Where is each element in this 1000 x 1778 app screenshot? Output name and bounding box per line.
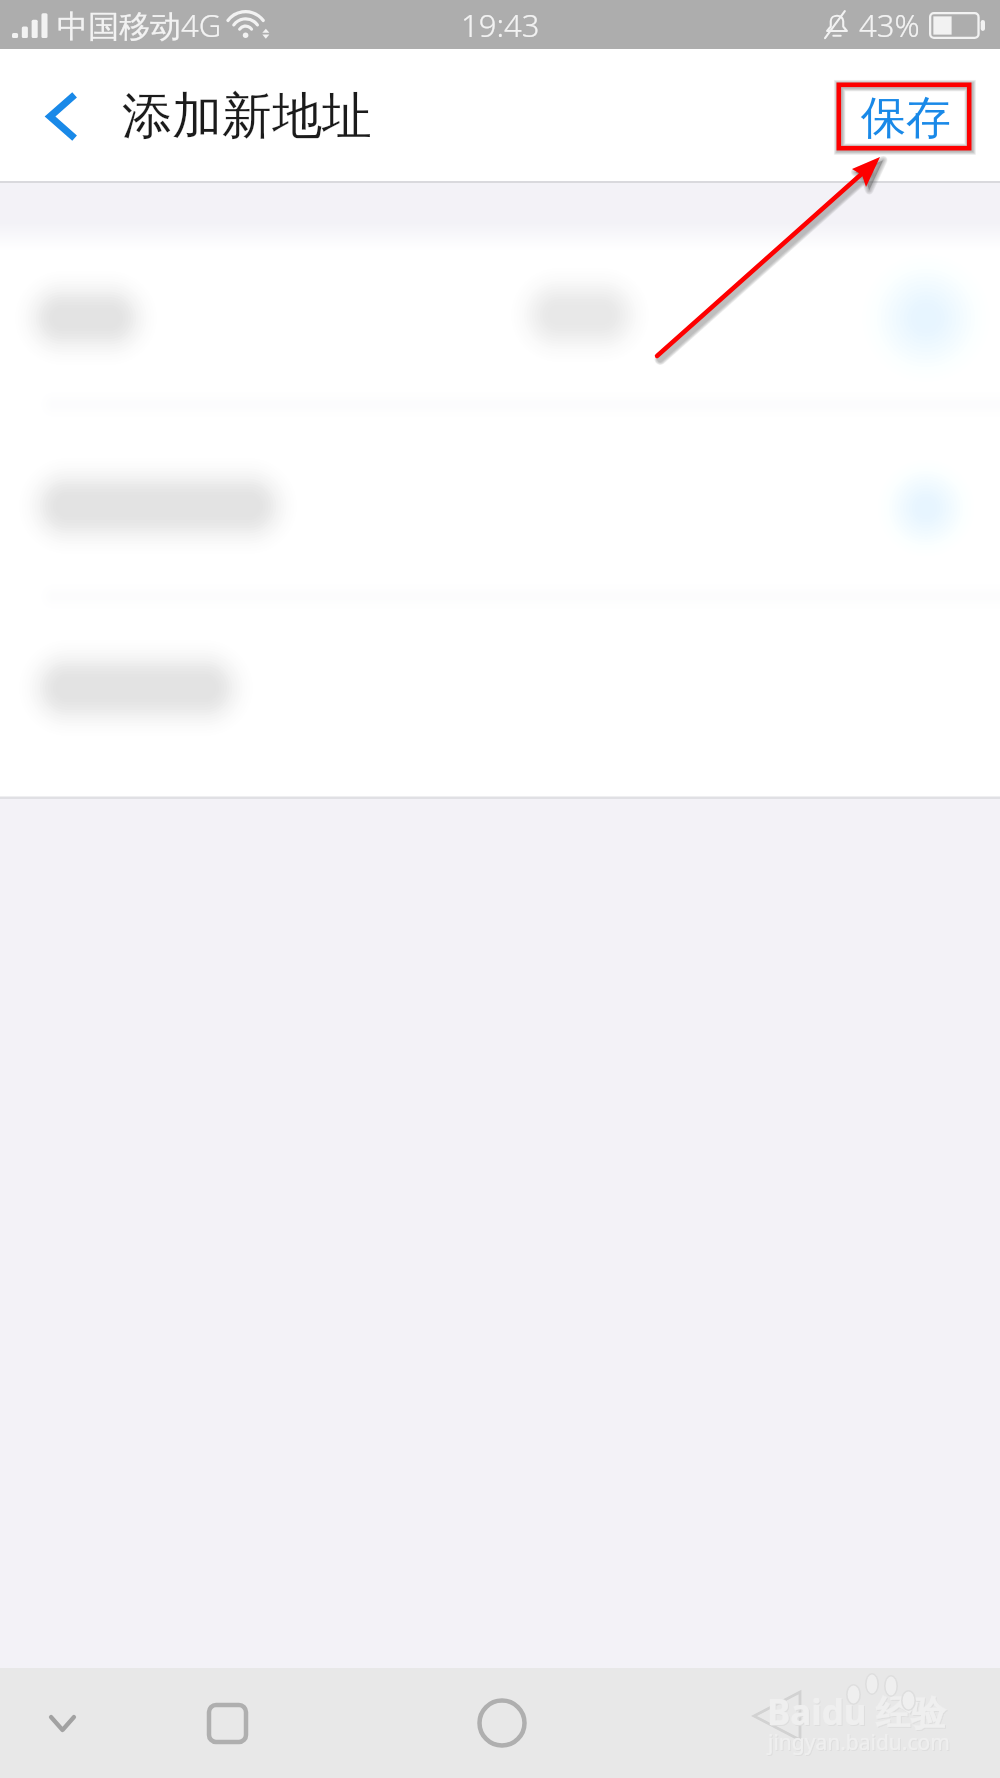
staticText: 19:43	[461, 4, 540, 46]
staticText: Baidu 经验	[768, 1689, 947, 1737]
button[interactable]: Home	[448, 1668, 556, 1778]
button[interactable]: Back	[0, 49, 124, 183]
staticText: Baidu 经验	[767, 1688, 946, 1736]
button[interactable]: Detailed address	[0, 596, 1000, 799]
button[interactable]: Region	[0, 404, 1000, 596]
button[interactable]: Hide keyboard	[8, 1668, 116, 1778]
button[interactable]: Recents	[173, 1668, 281, 1778]
staticText: 添加新地址	[122, 85, 372, 148]
staticText: jingyan.baidu.com	[769, 1729, 951, 1758]
button[interactable]: Name and phone number	[0, 225, 1000, 404]
staticText: 中国移动4G	[57, 4, 222, 46]
staticText: jingyan.baidu.com	[768, 1728, 950, 1757]
staticText: 保存	[861, 90, 951, 147]
staticText: 43%	[859, 4, 920, 46]
button[interactable]: 保存	[861, 90, 951, 147]
